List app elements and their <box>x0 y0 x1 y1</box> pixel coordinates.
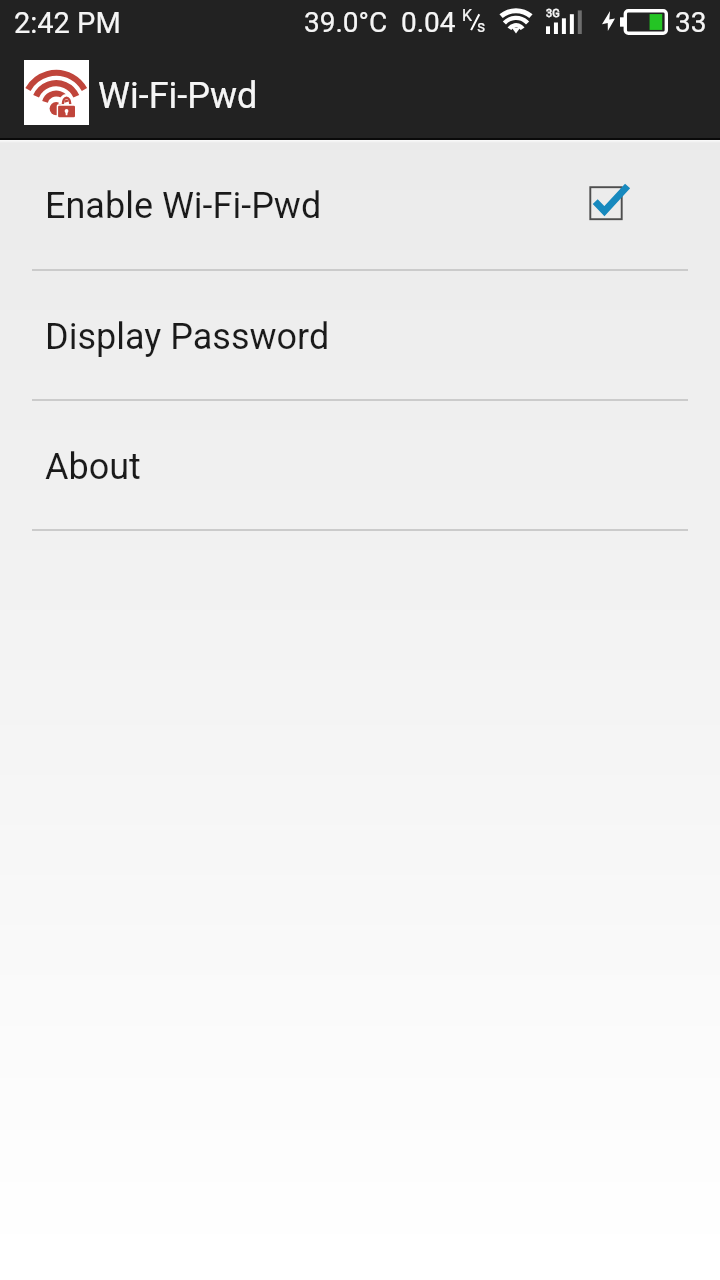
staticText: About <box>45 446 141 488</box>
button[interactable]: Enable Wi-Fi-Pwd <box>0 143 720 271</box>
staticText: Enable Wi-Fi-Pwd <box>45 185 322 227</box>
staticText: 3G <box>546 7 560 20</box>
staticText: K <box>462 6 473 25</box>
staticText: Wi-Fi-Pwd <box>98 75 258 117</box>
button[interactable]: Enable Wi-Fi-Pwd toggle <box>576 176 636 236</box>
staticText: 33 <box>675 6 707 39</box>
staticText: s <box>477 17 486 36</box>
button[interactable]: About <box>0 401 720 531</box>
staticText: 39.0°C <box>304 6 388 39</box>
staticText: Display Password <box>45 316 330 358</box>
button[interactable]: Display Password <box>0 271 720 401</box>
staticText: 2:42 PM <box>14 6 121 40</box>
staticText: 0.04 <box>401 6 456 39</box>
